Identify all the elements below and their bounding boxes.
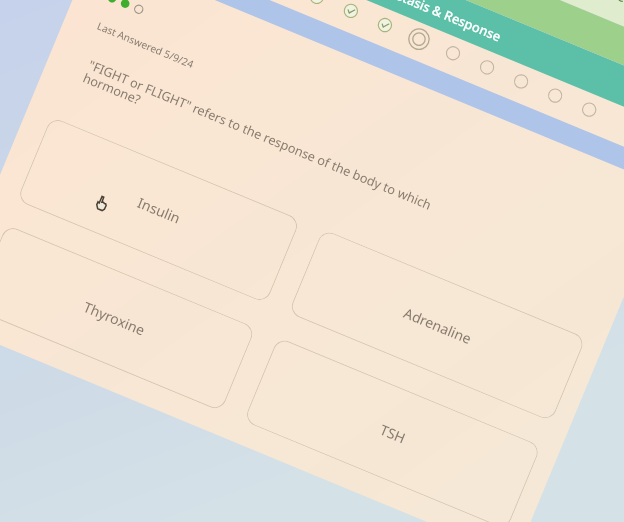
- staticText: Recommended: [565, 0, 624, 18]
- other: Pointer: [91, 193, 113, 215]
- button[interactable]: TSH: [243, 337, 541, 522]
- staticText: Adrenaline: [401, 303, 474, 348]
- staticText: "FIGHT or FLIGHT" refers to the response…: [80, 55, 435, 227]
- button[interactable]: Adrenaline: [288, 229, 586, 422]
- staticText: Last Answered 5/9/24: [95, 19, 196, 71]
- button[interactable]: Insulin: [16, 116, 301, 304]
- staticText: Thyroxine: [81, 297, 148, 339]
- staticText: TSH: [377, 420, 408, 447]
- staticText: Homeostasis & Response: [352, 0, 504, 46]
- button[interactable]: Thyroxine: [0, 224, 256, 412]
- staticText: Insulin: [135, 193, 183, 228]
